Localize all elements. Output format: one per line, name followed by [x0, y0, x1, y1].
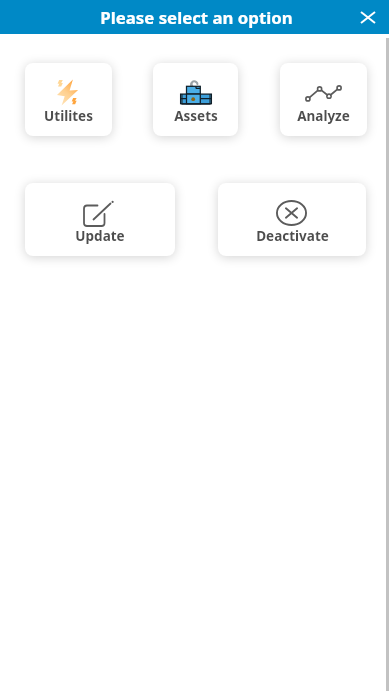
button[interactable]: Utilites	[25, 63, 112, 136]
button[interactable]: Close	[353, 2, 383, 32]
button[interactable]: Update	[25, 183, 175, 256]
staticText: Please select an option	[100, 6, 293, 29]
staticText: Update	[75, 227, 125, 245]
staticText: Deactivate	[256, 227, 329, 245]
button[interactable]: Deactivate	[218, 183, 366, 256]
button[interactable]: Analyze	[280, 63, 367, 136]
staticText: Utilites	[44, 107, 93, 125]
button[interactable]: Assets	[153, 63, 238, 136]
staticText: Analyze	[297, 107, 350, 125]
staticText: Assets	[174, 107, 218, 125]
